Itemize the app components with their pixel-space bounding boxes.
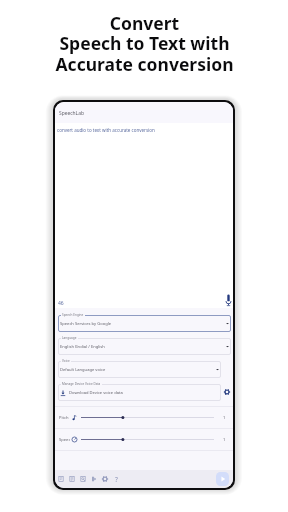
button[interactable]: Voice input microphone [224, 293, 232, 306]
staticText: 1 [223, 415, 226, 421]
staticText: Default Language voice [60, 367, 106, 373]
staticText: Language [62, 336, 77, 340]
button[interactable]: Playback [90, 475, 98, 483]
staticText: Manage Device Voice Data [62, 382, 101, 386]
staticText: Speech Services by Google [60, 321, 112, 327]
button[interactable]: Speech Services by Google [58, 313, 231, 330]
button[interactable]: Settings [101, 475, 109, 483]
staticText: English (India) / English [60, 344, 105, 350]
button[interactable]: Help [112, 475, 120, 483]
button[interactable]: English (India) / English [58, 336, 231, 353]
staticText: Download Device voice data [69, 390, 123, 396]
button[interactable]: Voice data settings [222, 387, 231, 396]
button[interactable]: Text format [57, 475, 65, 483]
staticText: Pitch [59, 415, 69, 421]
button[interactable]: Search text [79, 475, 87, 483]
staticText: SpeechLab [59, 110, 84, 117]
button[interactable]: Default Language voice [58, 359, 221, 376]
button[interactable]: Play speech [216, 472, 229, 486]
staticText: ? [115, 475, 118, 483]
button[interactable]: Download Device voice data [58, 382, 221, 399]
staticText: Speech Engine [62, 313, 84, 317]
staticText: Speed [59, 437, 70, 443]
staticText: 46 [58, 300, 64, 307]
staticText: 1 [223, 437, 226, 443]
staticText: convert audio to text with accurate conv… [57, 127, 155, 133]
staticText: Voice [62, 359, 70, 363]
staticText: Convert Speech to Text with Accurate con… [55, 11, 234, 76]
button[interactable]: Copy text [68, 475, 76, 483]
